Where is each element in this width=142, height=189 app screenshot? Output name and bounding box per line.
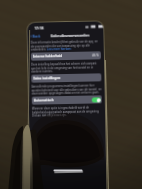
button[interactable]: Interne helderheid [31,51,101,61]
staticText: 46 % [92,53,99,57]
button[interactable]: Back [30,32,41,39]
staticText: Wanneer deze optie is ingeschakeld wordt… [32,105,102,117]
staticText: Gebruiksvoorwaarden [50,33,90,38]
staticText: Extra instellingen [33,76,61,81]
staticText: Back [32,33,41,38]
staticText: Deze informatie beschrijft het gebruik v… [31,39,101,51]
staticText: ‹ [30,33,33,39]
staticText: 17:18 [34,25,44,31]
button[interactable]: Automatisch [32,95,102,105]
staticText: Interne helderheid [33,54,63,59]
button[interactable]: Extra instellingen [31,73,101,83]
staticText: Deze instelling bepaalt hoe het scherm z… [31,61,101,73]
staticText: Automatisch [34,98,54,103]
staticText: Aanvullende programma instellingen kunne… [31,83,102,95]
